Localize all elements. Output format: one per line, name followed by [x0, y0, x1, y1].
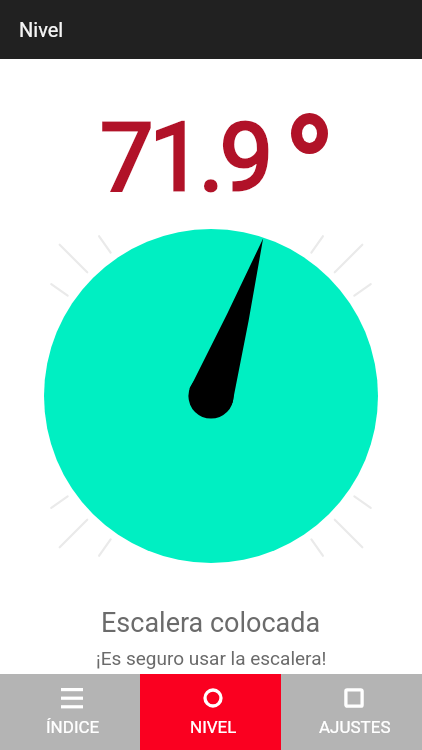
staticText: AJUSTES: [319, 717, 391, 737]
button[interactable]: NIVEL: [140, 674, 281, 750]
button[interactable]: ÍNDICE: [0, 674, 140, 750]
staticText: 71.9: [100, 102, 270, 213]
staticText: Escalera colocada: [101, 607, 321, 639]
staticText: NIVEL: [190, 717, 237, 737]
other: NIVEL: [202, 688, 224, 708]
staticText: ¡Es seguro usar la escalera!: [96, 647, 327, 669]
other: AJUSTES: [343, 688, 365, 708]
staticText: ÍNDICE: [46, 717, 100, 737]
staticText: Nivel: [19, 18, 64, 41]
button[interactable]: AJUSTES: [281, 674, 422, 750]
other: ÍNDICE: [61, 688, 83, 708]
